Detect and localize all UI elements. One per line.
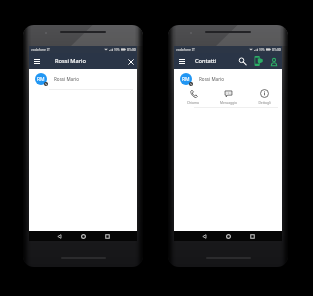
staticText: vodafone IT	[176, 47, 195, 52]
button[interactable]: Recents	[247, 231, 257, 241]
button[interactable]: Chiama	[176, 89, 210, 104]
staticText: 01:30	[272, 47, 281, 52]
staticText: 99%	[114, 48, 120, 52]
button[interactable]: Messaggio	[211, 89, 245, 104]
button[interactable]: Home	[78, 231, 88, 241]
button[interactable]: Menu	[177, 56, 187, 66]
staticText: Contatti	[195, 57, 217, 65]
staticText: Messaggio	[220, 100, 237, 104]
staticText: Rossi Mario	[54, 76, 80, 82]
staticText: Dettagli	[258, 100, 271, 104]
button[interactable]: Search	[235, 54, 249, 68]
staticText: Chiama	[187, 100, 199, 104]
button[interactable]: RM	[29, 69, 137, 89]
staticText: Rossi Mario	[199, 76, 225, 82]
button[interactable]: Back	[199, 231, 209, 241]
staticText: 01:30	[127, 47, 136, 52]
staticText: RM	[37, 76, 45, 83]
staticText: vodafone IT	[31, 47, 50, 52]
button[interactable]: Home	[223, 231, 233, 241]
button[interactable]: RM	[174, 69, 282, 89]
staticText: RM	[182, 76, 190, 83]
button[interactable]: Back	[54, 231, 64, 241]
button[interactable]: Menu	[32, 56, 42, 66]
button[interactable]: Profile	[267, 54, 281, 68]
button[interactable]: Close	[125, 56, 136, 67]
staticText: 99%	[259, 48, 265, 52]
staticText: Rossi Mario	[55, 57, 86, 65]
button[interactable]: Dettagli	[247, 89, 281, 104]
button[interactable]: Recents	[102, 231, 112, 241]
button[interactable]: New message	[251, 54, 265, 68]
